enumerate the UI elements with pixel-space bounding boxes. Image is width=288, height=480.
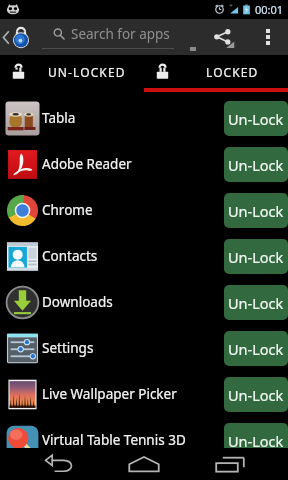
button[interactable]: Un-Lock bbox=[224, 101, 288, 136]
staticText: Un-Lock bbox=[228, 201, 284, 221]
button[interactable]: Live Wallpaper Picker bbox=[0, 371, 288, 417]
button[interactable]: Contacts bbox=[0, 233, 288, 279]
button[interactable]: Un-Lock bbox=[224, 193, 288, 228]
button[interactable]: Virtual Table Tennis 3D bbox=[0, 417, 288, 463]
staticText: Un-Lock bbox=[228, 431, 284, 451]
button[interactable]: Downloads bbox=[0, 279, 288, 325]
staticText: Virtual Table Tennis 3D bbox=[42, 431, 224, 449]
staticText: Un-Lock bbox=[228, 385, 284, 405]
staticText: Search for apps bbox=[71, 25, 170, 43]
button[interactable]: Search for apps bbox=[42, 19, 197, 55]
button[interactable]: Un-Lock bbox=[224, 239, 288, 274]
button[interactable]: Recent apps bbox=[204, 448, 256, 480]
staticText: Adobe Reader bbox=[42, 155, 224, 173]
staticText: LOCKED bbox=[206, 64, 259, 80]
button[interactable]: Un-Lock bbox=[224, 331, 288, 366]
staticText: Chrome bbox=[42, 201, 224, 219]
button[interactable]: Share bbox=[197, 19, 248, 55]
button[interactable]: Un-Lock bbox=[224, 377, 288, 412]
staticText: Un-Lock bbox=[228, 247, 284, 267]
button[interactable]: Un-Lock bbox=[224, 423, 288, 458]
staticText: 00:01 bbox=[255, 2, 284, 17]
button[interactable]: LOCKED bbox=[144, 55, 288, 88]
button[interactable]: Home bbox=[118, 448, 170, 480]
staticText: Settings bbox=[42, 339, 224, 357]
staticText: Live Wallpaper Picker bbox=[42, 385, 224, 403]
staticText: Tabla bbox=[42, 109, 224, 127]
staticText: Contacts bbox=[42, 247, 224, 265]
staticText: Un-Lock bbox=[228, 109, 284, 129]
button[interactable]: Back bbox=[34, 448, 86, 480]
staticText: Un-Lock bbox=[228, 293, 284, 313]
button[interactable]: Up, AppLock bbox=[0, 19, 36, 55]
staticText: Downloads bbox=[42, 293, 224, 311]
staticText: Un-Lock bbox=[228, 339, 284, 359]
staticText: UN-LOCKED bbox=[48, 64, 126, 80]
button[interactable]: Settings bbox=[0, 325, 288, 371]
button[interactable]: Tabla bbox=[0, 95, 288, 141]
staticText: Un-Lock bbox=[228, 155, 284, 175]
button[interactable]: Chrome bbox=[0, 187, 288, 233]
button[interactable]: More options bbox=[248, 19, 288, 55]
button[interactable]: Adobe Reader bbox=[0, 141, 288, 187]
button[interactable]: Un-Lock bbox=[224, 285, 288, 320]
button[interactable]: UN-LOCKED bbox=[0, 55, 144, 88]
button[interactable]: Un-Lock bbox=[224, 147, 288, 182]
